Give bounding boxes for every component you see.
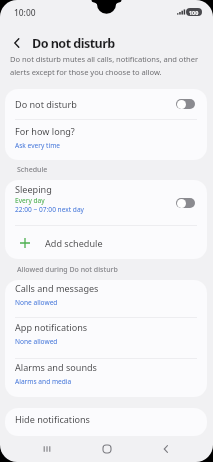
staticText: Allowed during Do not disturb — [17, 265, 118, 275]
button[interactable]: Alarms and sounds — [5, 359, 207, 397]
staticText: Add schedule — [45, 237, 103, 249]
button[interactable]: Recents — [35, 437, 59, 461]
staticText: Do not disturb — [32, 35, 115, 52]
staticText: 100 — [189, 9, 199, 16]
button[interactable]: Hide notifications — [5, 408, 207, 436]
staticText: 10:00 — [14, 7, 36, 18]
staticText: For how long? — [15, 125, 75, 137]
staticText: App notifications — [15, 321, 88, 333]
button[interactable]: For how long? — [5, 120, 207, 160]
staticText: Calls and messages — [15, 282, 99, 294]
staticText: Hide notifications — [15, 413, 90, 425]
button[interactable]: Do not disturb — [5, 89, 207, 119]
staticText: Do not disturb mutes all calls, notifica… — [10, 54, 200, 77]
button[interactable]: Home — [95, 437, 119, 461]
staticText: Ask every time — [15, 141, 61, 150]
staticText: None allowed — [15, 337, 58, 346]
button[interactable]: Toggle — [176, 198, 195, 208]
staticText: Do not disturb — [15, 98, 77, 110]
staticText: Alarms and sounds — [15, 361, 97, 373]
button[interactable]: Back — [8, 34, 26, 52]
button[interactable]: App notifications — [5, 318, 207, 358]
staticText: Every day — [15, 196, 45, 205]
button[interactable]: Calls and messages — [5, 280, 207, 317]
staticText: Schedule — [17, 165, 48, 175]
staticText: Alarms and media — [15, 377, 72, 386]
button[interactable]: Add schedule — [5, 226, 207, 259]
staticText: 22:00 ~ 07:00 next day — [15, 205, 84, 214]
button[interactable]: Toggle — [176, 99, 195, 109]
staticText: None allowed — [15, 298, 58, 307]
staticText: Sleeping — [15, 183, 52, 195]
button[interactable]: Back — [154, 437, 178, 461]
button[interactable]: Sleeping — [5, 180, 207, 225]
